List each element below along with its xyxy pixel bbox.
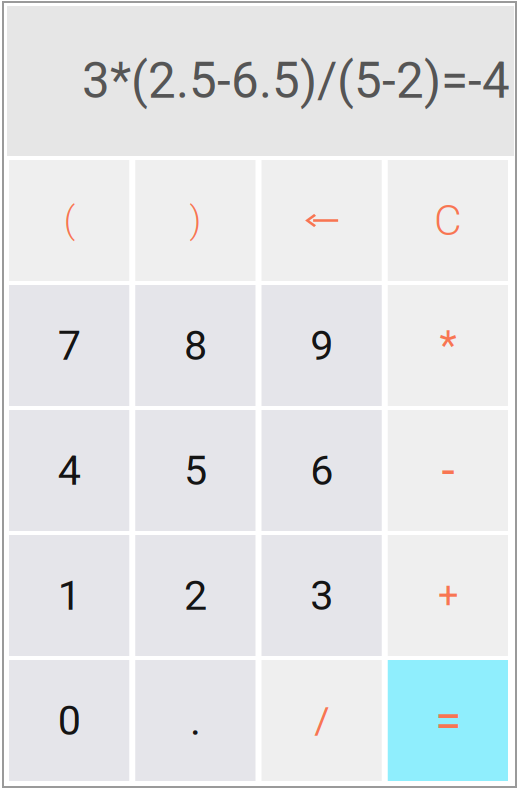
button[interactable]: 2 (135, 535, 255, 656)
staticText: C (434, 195, 462, 245)
staticText: 2 (184, 571, 207, 620)
staticText: 5 (184, 446, 207, 495)
button[interactable]: = (388, 660, 508, 781)
button[interactable]: 5 (135, 410, 255, 531)
button[interactable]: - (388, 410, 508, 531)
staticText: 3 (310, 571, 333, 620)
staticText: * (439, 322, 456, 369)
button[interactable]: 6 (261, 410, 382, 531)
staticText: / (314, 699, 329, 742)
button[interactable]: 1 (9, 535, 129, 656)
button[interactable]: ) (135, 160, 255, 281)
button[interactable]: . (135, 660, 255, 781)
button[interactable]: 0 (9, 660, 129, 781)
button[interactable]: 7 (9, 285, 129, 406)
button[interactable]: 3 (261, 535, 382, 656)
staticText: 6 (310, 446, 333, 495)
staticText: + (438, 574, 458, 617)
button[interactable]: 4 (9, 410, 129, 531)
staticText: 9 (310, 321, 333, 370)
staticText: = (435, 692, 461, 749)
staticText: 4 (58, 446, 81, 495)
button[interactable]: 8 (135, 285, 255, 406)
staticText: 3*(2.5-6.5)/(5-2)=-4 (82, 52, 510, 110)
button[interactable]: + (388, 535, 508, 656)
staticText: - (441, 442, 454, 499)
button[interactable]: C (388, 160, 508, 281)
staticText: 8 (184, 321, 207, 370)
staticText: ( (64, 199, 75, 242)
button[interactable]: ( (9, 160, 129, 281)
staticText: ) (189, 199, 201, 242)
button[interactable]: Backspace (261, 160, 382, 281)
staticText: . (190, 696, 201, 745)
button[interactable]: / (261, 660, 382, 781)
button[interactable]: * (388, 285, 508, 406)
button[interactable]: 9 (261, 285, 382, 406)
staticText: 7 (58, 321, 81, 370)
staticText: 1 (58, 571, 81, 620)
staticText: 0 (58, 696, 81, 745)
